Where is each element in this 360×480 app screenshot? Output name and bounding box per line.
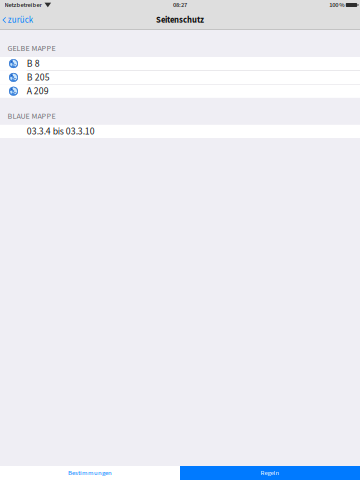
staticText: 08:27 (173, 0, 187, 9)
staticText: Netzbetreiber (4, 0, 41, 9)
staticText: B 8 (27, 57, 40, 71)
staticText: Regeln (260, 468, 279, 478)
staticText: A 209 (27, 84, 49, 98)
staticText: 03.3.4 bis 03.3.10 (27, 124, 95, 138)
staticText: 100 % (329, 0, 344, 9)
staticText: BLAUE MAPPE (7, 111, 55, 122)
button[interactable]: zurück (0, 10, 37, 30)
button[interactable]: B 205 (0, 71, 360, 84)
button[interactable]: Bestimmungen (0, 466, 180, 480)
staticText: zurück (8, 14, 33, 26)
staticText: GELBE MAPPE (7, 43, 55, 54)
staticText: Seitenschutz (156, 14, 204, 26)
staticText: B 205 (27, 70, 50, 84)
button[interactable]: A 209 (0, 85, 360, 98)
staticText: Bestimmungen (68, 468, 112, 478)
button[interactable]: Regeln (180, 466, 360, 480)
button[interactable]: 03.3.4 bis 03.3.10 (0, 125, 360, 138)
button[interactable]: B 8 (0, 57, 360, 70)
